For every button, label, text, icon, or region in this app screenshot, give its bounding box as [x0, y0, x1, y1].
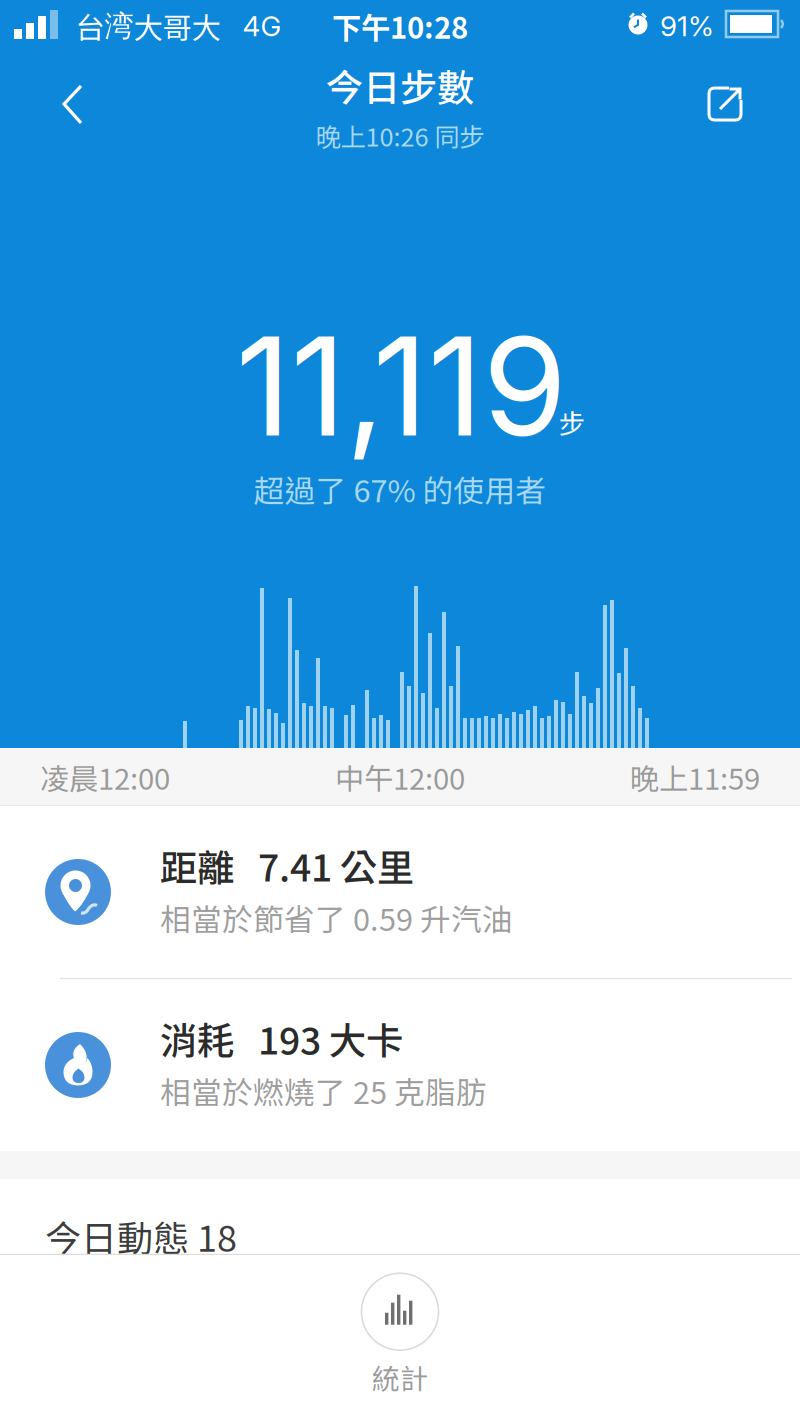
staticText: 晚上11:59	[630, 756, 760, 798]
staticText: 統計	[372, 1357, 428, 1397]
staticText: 超過了 67% 的使用者	[253, 467, 546, 511]
staticText: 4G	[242, 9, 281, 43]
staticText: 相當於燃燒了 25 克脂肪	[160, 1068, 487, 1113]
staticText: 晚上10:26 同步	[315, 117, 484, 154]
staticText: 消耗 193 大卡	[160, 1011, 403, 1065]
staticText: 步	[558, 403, 585, 441]
button[interactable]: 距離 7.41 公里	[0, 806, 800, 978]
staticText: 11,119	[235, 304, 566, 468]
staticText: 91%	[660, 9, 714, 43]
staticText: 中午12:00	[335, 756, 465, 798]
staticText: 今日動態 18	[45, 1210, 237, 1262]
button[interactable]: 統計	[361, 1273, 439, 1397]
staticText: 凌晨12:00	[40, 756, 170, 798]
staticText: 相當於節省了 0.59 升汽油	[160, 895, 513, 940]
button[interactable]	[56, 82, 100, 128]
staticText: 下午10:28	[332, 5, 468, 47]
staticText: 距離 7.41 公里	[160, 838, 414, 892]
button[interactable]: 消耗 193 大卡	[0, 979, 800, 1151]
button[interactable]	[704, 83, 746, 125]
staticText: 今日步數	[326, 58, 474, 112]
staticText: 台湾大哥大	[75, 5, 220, 47]
